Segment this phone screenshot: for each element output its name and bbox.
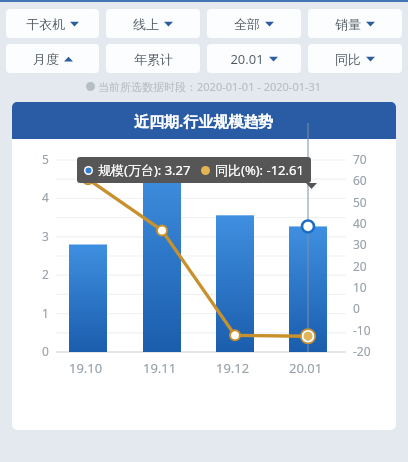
staticText: -20 [353, 343, 371, 359]
staticText: 19.10 [69, 359, 103, 377]
button[interactable]: 销量 [308, 9, 402, 38]
staticText: 2 [42, 266, 49, 282]
staticText: 19.12 [216, 359, 250, 377]
staticText: -10 [353, 322, 371, 338]
staticText: 40 [353, 215, 367, 231]
button[interactable]: 20.01 [207, 44, 301, 73]
button[interactable]: 年累计 [106, 44, 200, 73]
staticText: 干衣机 [26, 16, 65, 32]
staticText: 60 [353, 172, 367, 188]
staticText: 3 [42, 228, 49, 244]
staticText: 30 [353, 236, 367, 252]
staticText: 近四期.行业规模趋势 [134, 111, 274, 131]
button[interactable]: 线上 [106, 9, 200, 38]
staticText: 10 [353, 279, 367, 295]
staticText: 同比 [335, 51, 361, 67]
staticText: 5 [42, 151, 49, 167]
staticText: 规模(万台): 3.27 [98, 161, 191, 179]
staticText: 0 [42, 343, 49, 359]
button[interactable]: 月度 [6, 44, 99, 73]
staticText: 20.01 [289, 359, 323, 377]
staticText: 1 [42, 305, 49, 321]
button[interactable]: 全部 [207, 9, 301, 38]
button[interactable]: 同比 [308, 44, 402, 73]
staticText: 月度 [33, 51, 59, 67]
button[interactable]: 干衣机 [6, 9, 99, 38]
staticText: 50 [353, 194, 367, 210]
staticText: 全部 [234, 16, 260, 32]
staticText: 70 [353, 151, 367, 167]
staticText: 同比(%): -12.61 [215, 161, 304, 179]
other: Time [86, 82, 95, 91]
staticText: 销量 [335, 16, 361, 32]
staticText: 19.11 [143, 359, 177, 377]
staticText: 0 [353, 300, 360, 316]
staticText: 年累计 [134, 51, 173, 67]
staticText: 20 [353, 258, 367, 274]
staticText: 4 [42, 189, 49, 205]
staticText: 线上 [133, 16, 159, 32]
button[interactable]: 近四期.行业规模趋势 [12, 102, 396, 139]
staticText: 20.01 [230, 50, 264, 68]
staticText: 当前所选数据时段：2020-01-01 - 2020-01-31 [98, 79, 322, 94]
